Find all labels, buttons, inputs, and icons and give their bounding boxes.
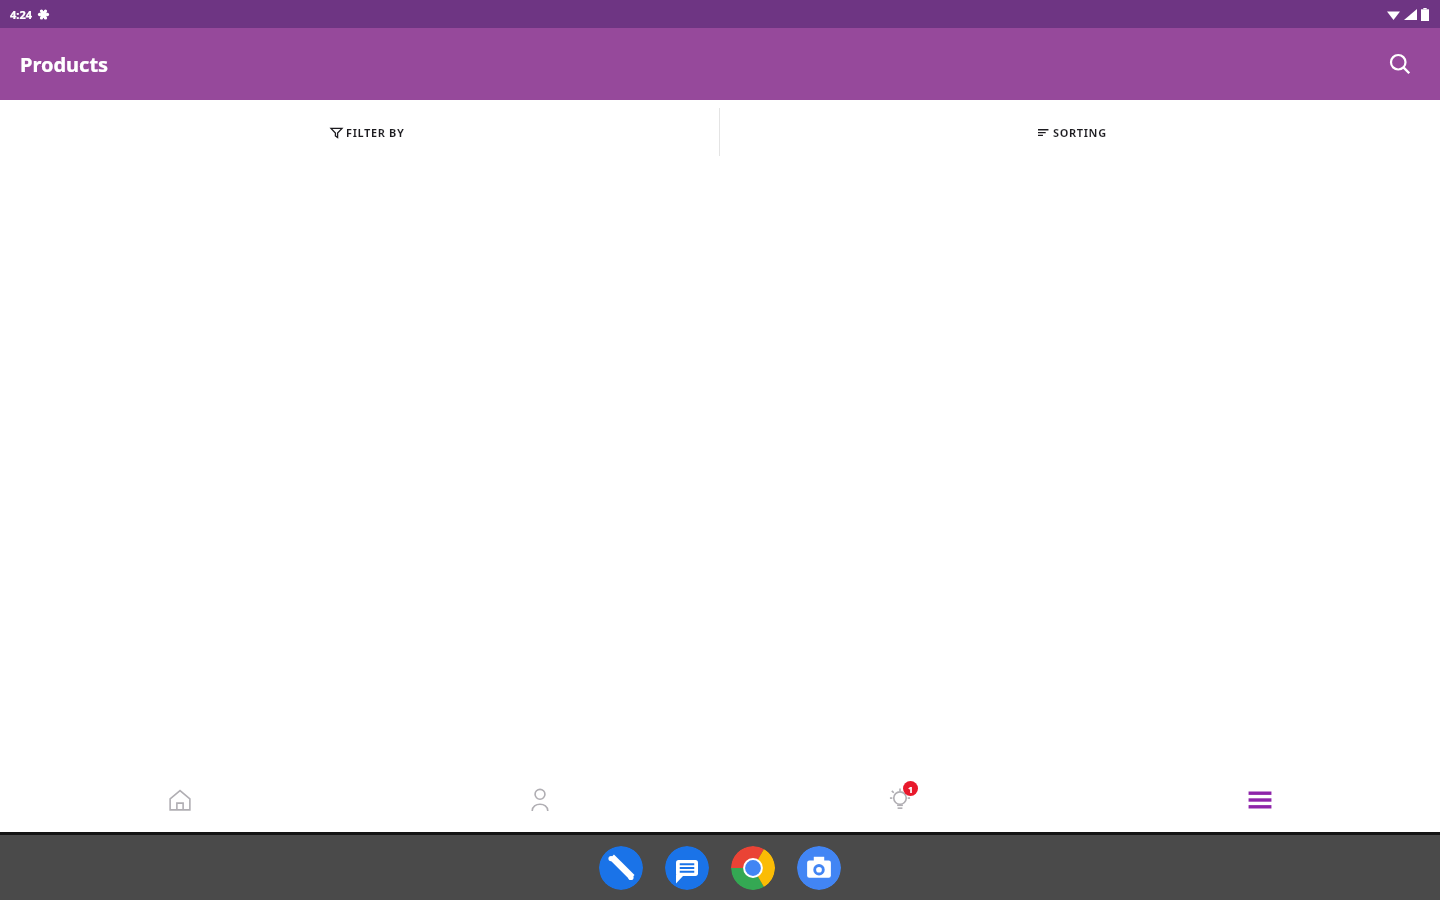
staticText: SORTING xyxy=(1053,125,1107,140)
button[interactable]: Camera xyxy=(797,846,841,890)
button[interactable]: Home xyxy=(0,768,360,832)
button[interactable]: FILTER BY xyxy=(16,108,719,156)
button[interactable]: Messages xyxy=(665,846,709,890)
staticText: Products xyxy=(20,51,109,78)
button[interactable]: SORTING xyxy=(720,108,1424,156)
button[interactable]: Notifications xyxy=(720,768,1080,832)
button[interactable]: Chrome xyxy=(731,846,775,890)
button[interactable]: Search xyxy=(1380,44,1420,84)
staticText: 1 xyxy=(908,783,914,795)
staticText: 4:24 xyxy=(10,7,32,22)
button[interactable]: Profile xyxy=(360,768,720,832)
button[interactable]: Menu xyxy=(1080,768,1440,832)
button[interactable]: Phone xyxy=(599,846,643,890)
staticText: FILTER BY xyxy=(346,125,405,140)
